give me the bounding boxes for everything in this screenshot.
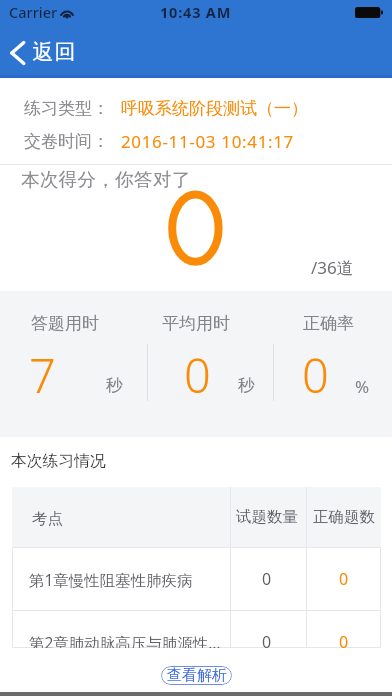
staticText: 本次得分，你答对了 — [21, 168, 191, 191]
staticText: 0 — [302, 343, 329, 403]
staticText: 0 — [262, 568, 272, 590]
staticText: 试题数量 — [236, 507, 298, 527]
staticText: 答题用时 — [31, 313, 99, 334]
staticText: 交卷时间： — [24, 131, 109, 152]
staticText: 平均用时 — [162, 313, 230, 334]
staticText: 第2章肺动脉高压与肺源性… — [29, 632, 225, 653]
staticText: 本次练习情况 — [11, 451, 106, 471]
button[interactable]: 返回 — [0, 28, 92, 78]
staticText: 呼吸系统阶段测试（一） — [121, 98, 308, 119]
staticText: 正确题数 — [313, 507, 375, 527]
staticText: 练习类型： — [24, 98, 109, 119]
staticText: 0 — [262, 631, 272, 653]
staticText: 正确率 — [303, 313, 354, 334]
staticText: 秒 — [238, 375, 255, 396]
staticText: 10:43 AM — [160, 2, 232, 22]
button[interactable]: 查看解析 — [161, 666, 232, 685]
staticText: 返回 — [32, 39, 76, 65]
staticText: 查看解析 — [167, 666, 227, 685]
button[interactable]: 第2章肺动脉高压与肺源性… — [12, 611, 381, 673]
staticText: Carrier — [9, 2, 58, 22]
staticText: 第1章慢性阻塞性肺疾病 — [29, 569, 225, 590]
staticText: 考点 — [32, 509, 63, 529]
staticText: 0 — [339, 631, 349, 653]
staticText: 0 — [339, 568, 349, 590]
button[interactable]: 第1章慢性阻塞性肺疾病 — [12, 548, 381, 610]
staticText: 2016-11-03 10:41:17 — [121, 130, 294, 153]
staticText: /36道 — [311, 256, 354, 279]
staticText: 秒 — [106, 375, 123, 396]
staticText: 7 — [29, 343, 56, 403]
staticText: 0 — [184, 343, 211, 403]
staticText: % — [355, 375, 370, 398]
